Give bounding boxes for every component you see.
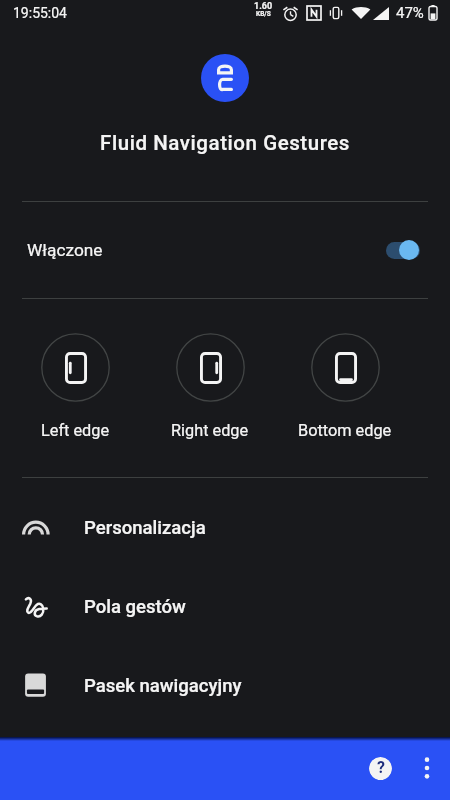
staticText: Fluid Navigation Gestures (0, 131, 450, 155)
button[interactable]: Right edge (148, 333, 272, 440)
staticText: Personalizacja (84, 517, 206, 539)
button[interactable]: Pola gestów (0, 567, 450, 646)
button[interactable]: Bottom edge (283, 333, 407, 440)
staticText: Pola gestów (84, 596, 186, 618)
button[interactable]: Włączone (0, 202, 450, 298)
button[interactable]: More options (414, 752, 438, 784)
staticText: KB/S (256, 10, 271, 18)
staticText: Left edge (41, 421, 110, 440)
staticText: Right edge (171, 421, 249, 440)
staticText: 19:55:04 (13, 5, 67, 21)
staticText: Bottom edge (298, 421, 392, 440)
button[interactable]: Pasek nawigacyjny (0, 646, 450, 725)
button[interactable]: Help (369, 757, 392, 780)
button[interactable]: App logo (201, 54, 249, 102)
staticText: ? (377, 758, 385, 777)
staticText: Pasek nawigacyjny (84, 675, 242, 697)
button[interactable]: Personalizacja (0, 488, 450, 567)
button[interactable]: Left edge (13, 333, 137, 440)
staticText: 47% (396, 4, 424, 22)
staticText: Włączone (27, 240, 103, 260)
button[interactable] (377, 235, 421, 265)
staticText: 1.60 (254, 1, 273, 12)
